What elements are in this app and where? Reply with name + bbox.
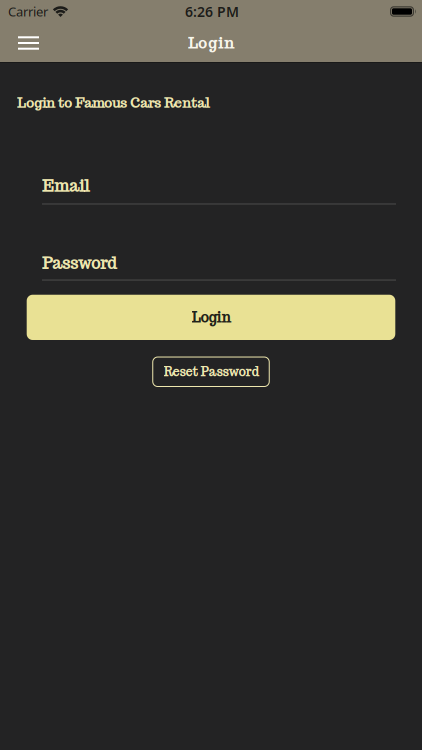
staticText: 6:26 PM [185, 2, 239, 21]
staticText: L o g i n [188, 33, 234, 53]
staticText: Email [42, 175, 90, 196]
button[interactable]: Login [27, 295, 395, 340]
button[interactable]: Reset Password [152, 356, 270, 387]
button[interactable]: Password [0, 253, 422, 281]
staticText: Carrier [8, 3, 48, 20]
staticText: Login to Famous Cars Rental [17, 94, 210, 111]
button[interactable]: Email [0, 175, 422, 205]
staticText: Reset Password [163, 364, 258, 380]
staticText: Login [191, 308, 230, 326]
staticText: Password [42, 253, 117, 273]
button[interactable] [0, 30, 39, 58]
